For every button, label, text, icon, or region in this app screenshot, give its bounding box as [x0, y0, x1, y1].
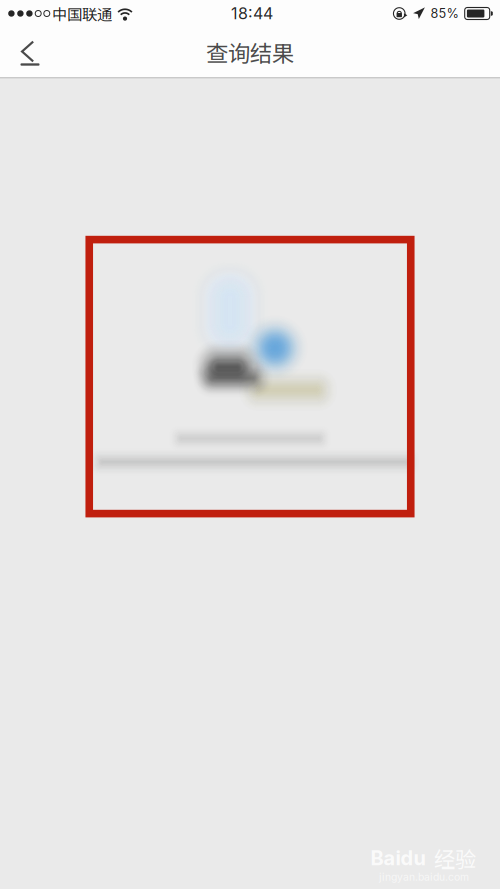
staticText: jingyan.baidu.com	[379, 871, 469, 883]
button[interactable]: Back	[2, 30, 54, 78]
staticText: 经验	[434, 843, 476, 873]
staticText: 18:44	[231, 4, 273, 23]
staticText: 中国联通	[52, 2, 112, 25]
staticText: 85%	[430, 6, 458, 21]
staticText: Baidu	[370, 846, 425, 870]
staticText: 查询结果	[206, 36, 294, 68]
